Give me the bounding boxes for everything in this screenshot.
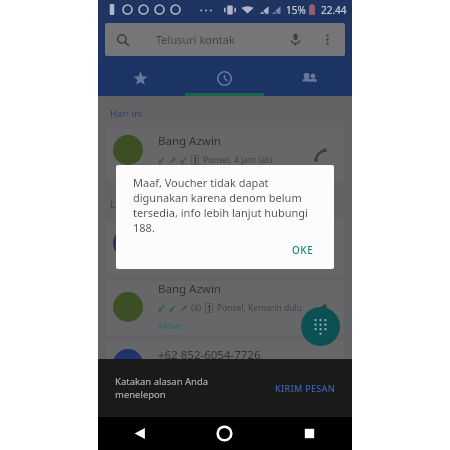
button[interactable]: Back <box>98 417 182 450</box>
staticText: 1 <box>193 155 198 165</box>
button[interactable]: Search <box>105 23 345 56</box>
button[interactable]: Home <box>182 417 267 450</box>
staticText: OKE <box>292 243 314 257</box>
staticText: Lebih lama <box>110 198 160 211</box>
other: More options <box>321 33 334 46</box>
button[interactable]: Recent apps <box>267 417 352 450</box>
staticText: Bang Azwin <box>158 281 221 297</box>
staticText: Akbar <box>158 319 183 331</box>
button[interactable]: OKE <box>284 239 322 261</box>
other: Call <box>313 148 327 162</box>
staticText: 1 <box>207 303 212 313</box>
other: Call <box>313 304 327 318</box>
staticText: +62 852-6054-7726 <box>158 347 261 363</box>
staticText: Telusuri kontak <box>156 32 235 47</box>
button[interactable]: Bang Azwin <box>106 127 344 181</box>
staticText: Ponsel, 4 jam lalu <box>203 154 273 166</box>
button[interactable]: Favourites <box>98 60 182 96</box>
staticText: KIRIM PESAN <box>275 382 335 394</box>
button[interactable]: Dialpad <box>301 307 340 346</box>
staticText: 22.44 <box>321 3 347 17</box>
staticText: Ponsel, Kemarin <box>192 368 257 380</box>
button[interactable]: Recents <box>182 60 267 96</box>
staticText: Maaf, Voucher tidak dapat digunakan kare… <box>133 175 324 235</box>
staticText: Ponsel, Kemarin dulu <box>217 302 302 314</box>
staticText: (4) <box>191 302 201 314</box>
staticText: Katakan alasan Anda menelepon <box>115 375 209 401</box>
button[interactable]: Bang Azwin <box>106 220 344 274</box>
other: Search <box>116 33 130 47</box>
button[interactable]: Bang Azwin <box>106 281 344 335</box>
staticText: 15% <box>286 3 306 17</box>
button[interactable]: KIRIM PESAN <box>270 377 340 399</box>
button[interactable]: Contacts <box>267 60 352 96</box>
button[interactable]: +62 852-6054-7726 <box>106 341 344 395</box>
staticText: Hari ini <box>110 107 143 120</box>
staticText: Bang Azwin <box>158 133 221 149</box>
other: Voice search <box>288 32 303 47</box>
